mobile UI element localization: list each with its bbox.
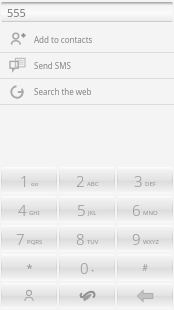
button[interactable]: Backspace [117, 283, 173, 309]
staticText: # [142, 262, 148, 273]
staticText: TUV [87, 238, 99, 246]
staticText: 1 [20, 171, 29, 191]
staticText: GHI [29, 209, 40, 217]
button[interactable]: 0 + [59, 254, 115, 281]
button[interactable]: Contacts [1, 283, 57, 309]
button[interactable]: 5 JKL [59, 196, 115, 223]
button[interactable]: Call [59, 283, 115, 309]
staticText: JKL [88, 209, 97, 217]
button[interactable]: Search the web [0, 79, 174, 104]
staticText: ABC [87, 180, 99, 188]
staticText: 7 [16, 229, 25, 249]
button[interactable]: Add to contacts [0, 27, 174, 52]
staticText: 5 [77, 200, 86, 220]
staticText: 0 [80, 258, 89, 278]
staticText: 555 [7, 5, 26, 20]
staticText: 3 [134, 171, 143, 191]
staticText: 6 [132, 200, 141, 220]
button[interactable]: Send SMS [0, 53, 174, 78]
button[interactable]: 4 GHI [1, 196, 57, 223]
staticText: PQRS [27, 238, 43, 246]
staticText: Search the web [34, 86, 92, 97]
button[interactable]: 7 PQRS [1, 225, 57, 252]
button[interactable]: 2 ABC [59, 167, 115, 194]
button[interactable]: 555 [1, 2, 173, 22]
button[interactable]: 8 TUV [59, 225, 115, 252]
staticText: Send SMS [34, 60, 71, 71]
staticText: 2 [76, 171, 85, 191]
staticText: + [91, 267, 95, 275]
button[interactable]: Star [1, 254, 57, 281]
staticText: * [26, 260, 33, 275]
staticText: 4 [18, 200, 27, 220]
button[interactable]: 6 MNO [117, 196, 173, 223]
staticText: DEF [145, 180, 156, 188]
button[interactable]: 3 DEF [117, 167, 173, 194]
button[interactable]: 1 oo [1, 167, 57, 194]
button[interactable]: Pound [117, 254, 173, 281]
staticText: oo [31, 180, 39, 188]
staticText: WXYZ [143, 238, 159, 246]
staticText: MNO [143, 209, 158, 217]
staticText: 9 [132, 229, 141, 249]
button[interactable]: 9 WXYZ [117, 225, 173, 252]
staticText: 8 [76, 229, 85, 249]
staticText: Add to contacts [34, 34, 93, 45]
